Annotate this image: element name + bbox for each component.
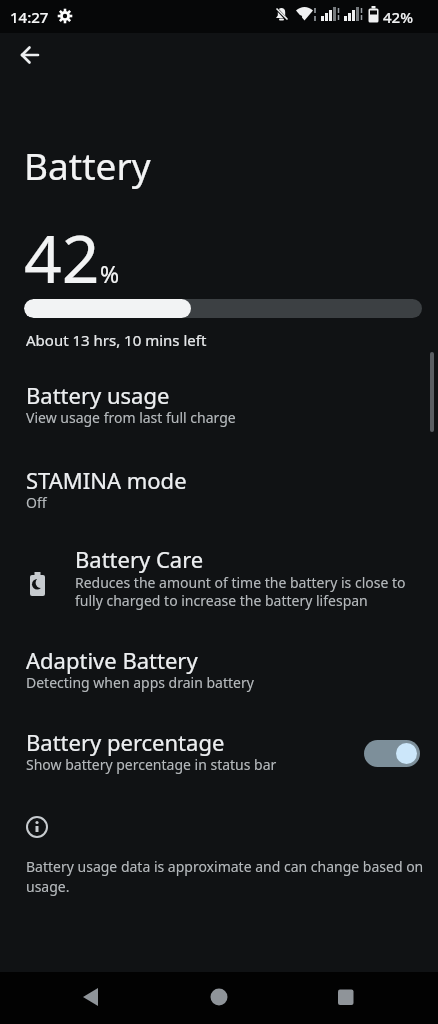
staticText: % (100, 258, 120, 289)
staticText: Off (26, 493, 47, 512)
button[interactable] (325, 978, 365, 1018)
staticText: Detecting when apps drain battery (26, 673, 254, 692)
button[interactable]: STAMINA mode (0, 453, 438, 531)
button[interactable] (199, 978, 239, 1018)
button[interactable] (70, 978, 110, 1018)
staticText: About 13 hrs, 10 mins left (26, 330, 207, 350)
staticText: Show battery percentage in status bar (26, 755, 277, 774)
button[interactable]: Battery Care (0, 536, 438, 626)
staticText: Battery usage data is approximate and ca… (26, 857, 424, 897)
staticText: 14:27 (10, 7, 49, 27)
button[interactable]: Adaptive Battery (0, 633, 438, 711)
staticText: Battery percentage (26, 727, 225, 757)
staticText: Battery usage (26, 380, 170, 410)
staticText: 42 (24, 212, 100, 302)
staticText: Reduces the amount of time the battery i… (75, 573, 406, 610)
button[interactable] (14, 40, 46, 72)
staticText: Battery (24, 140, 151, 190)
staticText: View usage from last full charge (26, 408, 236, 427)
staticText: STAMINA mode (26, 465, 187, 495)
button[interactable]: Battery usage (0, 368, 438, 446)
staticText: 42% (383, 7, 413, 27)
button[interactable] (364, 740, 420, 767)
button[interactable]: Battery percentage (0, 715, 438, 793)
staticText: Battery Care (75, 544, 204, 574)
staticText: Adaptive Battery (26, 645, 198, 675)
